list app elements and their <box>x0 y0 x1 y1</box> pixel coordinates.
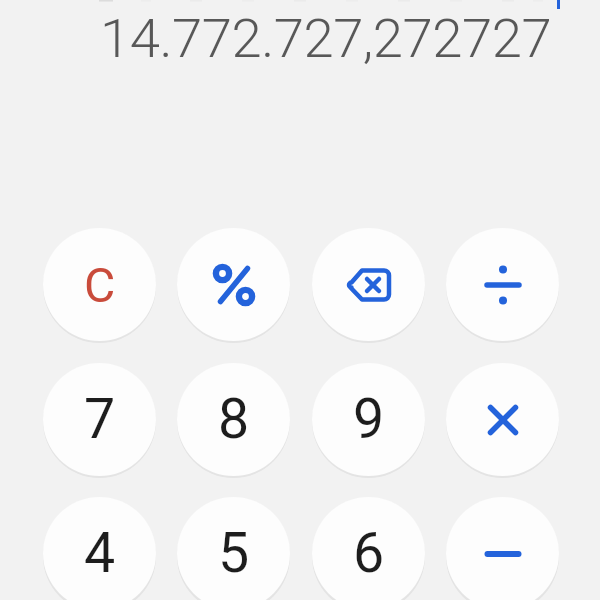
button[interactable] <box>446 228 559 341</box>
staticText: 6 <box>353 521 385 586</box>
staticText: 4 <box>84 521 116 586</box>
staticText: 8 <box>218 387 250 452</box>
button[interactable]: C <box>43 228 156 341</box>
button[interactable]: 5 <box>177 497 290 600</box>
staticText: C <box>84 257 116 313</box>
button[interactable]: 9 <box>312 363 425 476</box>
staticText: 14.772.727,272727 <box>100 6 552 70</box>
button[interactable] <box>312 228 425 341</box>
button[interactable]: 6 <box>312 497 425 600</box>
staticText: 7 <box>84 387 116 452</box>
staticText: 5 <box>218 521 250 586</box>
button[interactable] <box>446 363 559 476</box>
button[interactable] <box>177 228 290 341</box>
button[interactable]: 8 <box>177 363 290 476</box>
button[interactable]: 4 <box>43 497 156 600</box>
staticText: 9 <box>353 387 385 452</box>
button[interactable]: 7 <box>43 363 156 476</box>
button[interactable] <box>446 497 559 600</box>
